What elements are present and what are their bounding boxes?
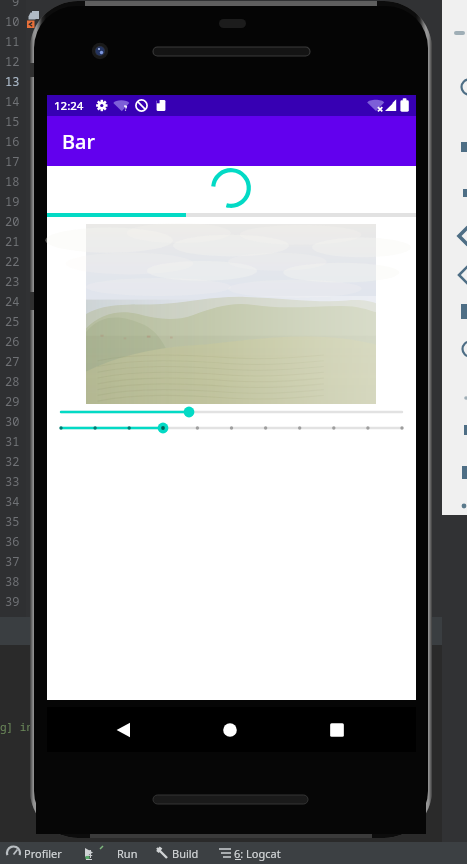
staticText: 39	[5, 593, 20, 609]
button[interactable]: Home	[208, 707, 252, 752]
staticText: 36	[5, 533, 20, 549]
staticText: 13	[5, 73, 20, 89]
staticText: 4	[86, 846, 93, 861]
staticText: 27	[5, 353, 20, 369]
staticText: 12	[5, 53, 20, 69]
staticText: 14	[5, 93, 20, 109]
staticText: 15	[5, 113, 20, 129]
staticText: 9	[12, 0, 20, 9]
staticText: 35	[5, 513, 20, 529]
staticText: 28	[5, 373, 20, 389]
staticText: 19	[5, 193, 20, 209]
staticText: 26	[5, 333, 20, 349]
staticText: 25	[5, 313, 20, 329]
staticText: 11	[5, 33, 20, 49]
staticText: 38	[5, 573, 20, 589]
staticText: 31	[5, 433, 20, 449]
staticText: 33	[5, 473, 20, 489]
staticText: 22	[5, 253, 20, 269]
staticText: 20	[5, 213, 20, 229]
staticText: 6: Logcat	[234, 846, 281, 861]
staticText: 30	[5, 413, 20, 429]
staticText: 21	[5, 233, 20, 249]
staticText: Profiler	[24, 846, 62, 861]
staticText: Build	[172, 846, 199, 861]
staticText: 23	[5, 273, 20, 289]
staticText: 17	[5, 153, 20, 169]
staticText: 16	[5, 133, 20, 149]
staticText: 12:24	[54, 98, 84, 114]
staticText: 18	[5, 173, 20, 189]
staticText: g] in	[0, 719, 33, 734]
staticText: 24	[5, 293, 20, 309]
staticText: 34	[5, 493, 20, 509]
staticText: Bar	[62, 128, 95, 155]
staticText: 32	[5, 453, 20, 469]
staticText: 29	[5, 393, 20, 409]
button[interactable]: Back	[102, 707, 146, 752]
staticText: 10	[5, 13, 20, 29]
staticText: 37	[5, 553, 20, 569]
staticText: Run	[117, 846, 138, 861]
button[interactable]: Recent apps	[315, 707, 359, 752]
